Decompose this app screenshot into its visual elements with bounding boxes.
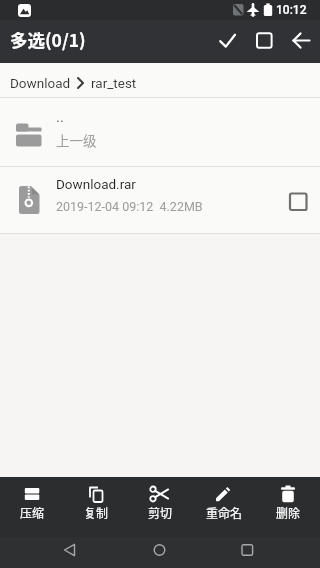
button[interactable] bbox=[281, 184, 315, 218]
staticText: 10:12 bbox=[276, 3, 307, 17]
button[interactable] bbox=[52, 537, 86, 568]
staticText: 删除 bbox=[276, 504, 301, 521]
button[interactable]: 复制 bbox=[64, 477, 128, 537]
staticText: 重命名 bbox=[206, 504, 243, 521]
staticText: 2019-12-04 09:12 4.22MB bbox=[56, 199, 203, 214]
button[interactable]: 删除 bbox=[256, 477, 320, 537]
button[interactable]: rar_test bbox=[91, 75, 137, 91]
button[interactable] bbox=[230, 537, 264, 568]
staticText: 多选(0/1) bbox=[10, 27, 86, 52]
button[interactable]: Download.rar bbox=[0, 167, 320, 233]
staticText: 复制 bbox=[84, 504, 109, 521]
staticText: Download.rar bbox=[56, 176, 136, 192]
button[interactable]: Download bbox=[10, 75, 71, 91]
button[interactable] bbox=[283, 20, 320, 63]
button[interactable] bbox=[209, 20, 246, 63]
staticText: 压缩 bbox=[20, 504, 45, 521]
button[interactable]: 压缩 bbox=[0, 477, 64, 537]
button[interactable]: .. bbox=[0, 98, 320, 166]
button[interactable]: 剪切 bbox=[128, 477, 192, 537]
button[interactable] bbox=[142, 537, 176, 568]
staticText: 剪切 bbox=[148, 504, 173, 521]
button[interactable] bbox=[246, 20, 283, 63]
staticText: .. bbox=[56, 108, 64, 126]
staticText: 上一级 bbox=[56, 130, 97, 150]
button[interactable]: 重命名 bbox=[192, 477, 256, 537]
